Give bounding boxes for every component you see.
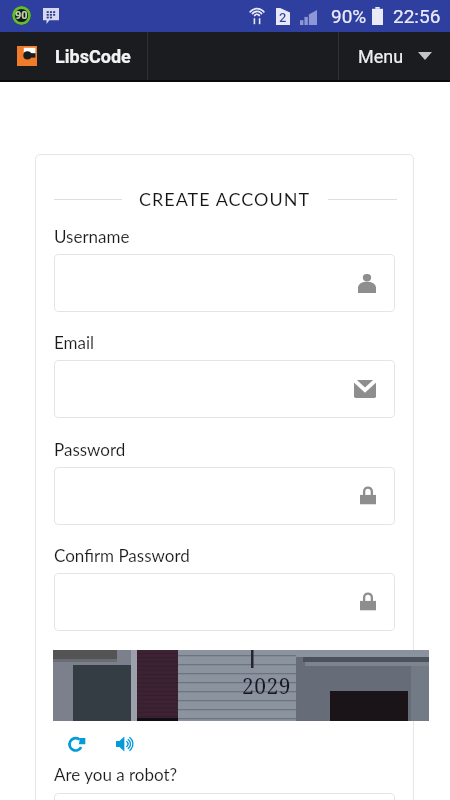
button[interactable]: Menu [340, 32, 450, 80]
button[interactable] [54, 254, 395, 312]
button[interactable]: Play captcha audio [112, 732, 139, 756]
button[interactable]: LibsCode [0, 32, 147, 80]
staticText: 90 [15, 9, 28, 22]
staticText: 22:56 [393, 5, 441, 27]
staticText: Menu [358, 46, 404, 67]
staticText: Confirm Password [54, 545, 190, 565]
staticText: 2029 [242, 672, 291, 701]
button[interactable] [54, 793, 395, 800]
staticText: CREATE ACCOUNT [139, 188, 311, 210]
staticText: Are you a robot? [54, 764, 178, 784]
button[interactable]: Refresh captcha [64, 732, 91, 756]
button[interactable] [54, 573, 395, 631]
staticText: Password [54, 439, 126, 459]
staticText: Username [54, 226, 130, 246]
button[interactable] [54, 360, 395, 418]
button[interactable] [54, 467, 395, 525]
staticText: 90% [331, 5, 367, 27]
staticText: Email [54, 332, 95, 352]
staticText: LibsCode [55, 46, 131, 67]
staticText: 2 [279, 10, 287, 25]
